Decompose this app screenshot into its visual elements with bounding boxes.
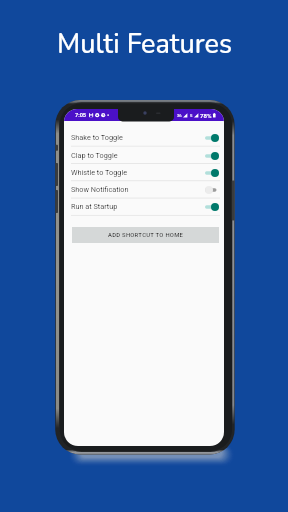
button[interactable]: Whistle to Toggle: [64, 164, 224, 181]
staticText: 36: [177, 113, 182, 118]
staticText: 7:05: [75, 112, 87, 119]
staticText: ADD SHORTCUT TO HOME: [108, 232, 184, 239]
staticText: Multi Features: [57, 26, 232, 63]
button[interactable]: Clap to Toggle: [64, 147, 224, 164]
button[interactable]: ADD SHORTCUT TO HOME: [72, 227, 219, 243]
button[interactable]: Shake to Toggle: [64, 129, 224, 146]
staticText: Show Notification: [71, 185, 129, 194]
staticText: Run at Startup: [71, 202, 118, 211]
button[interactable]: Run at Startup: [64, 198, 224, 215]
staticText: Shake to Toggle: [71, 133, 123, 142]
button[interactable]: Show Notification: [64, 181, 224, 198]
staticText: Whistle to Toggle: [71, 168, 128, 177]
staticText: 5: [190, 113, 193, 118]
staticText: Clap to Toggle: [71, 151, 118, 160]
staticText: 78%: [200, 112, 212, 119]
